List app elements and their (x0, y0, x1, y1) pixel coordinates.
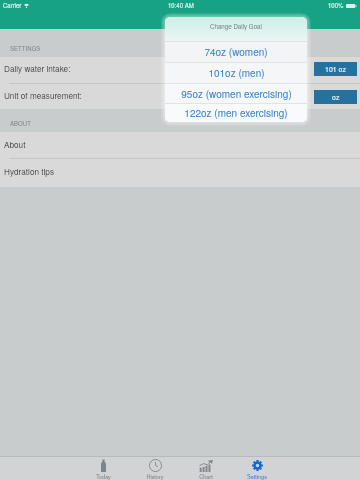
button[interactable]: Settings tab (231, 457, 283, 480)
staticText: 101 oz (325, 64, 347, 74)
staticText: Daily water intake: (4, 63, 71, 75)
staticText: Hydration tips (4, 166, 55, 178)
staticText: 101oz (men) (208, 66, 265, 80)
button[interactable]: Today tab (77, 457, 129, 480)
button[interactable]: 95oz (women exercising) (165, 84, 307, 103)
staticText: 100% (328, 1, 344, 10)
button[interactable]: Unit of measurement: (0, 84, 360, 109)
staticText: Chart (199, 473, 213, 480)
button[interactable]: 74oz (women) (165, 42, 307, 62)
staticText: 95oz (women exercising) (181, 87, 292, 101)
button[interactable]: oz (314, 90, 357, 104)
button[interactable]: About (0, 132, 360, 158)
button[interactable]: 122oz (men exercising) (165, 104, 307, 122)
staticText: SETTINGS (10, 44, 41, 53)
button[interactable]: Chart tab (180, 457, 232, 480)
staticText: oz (332, 92, 340, 102)
staticText: About (4, 139, 26, 151)
staticText: Unit of measurement: (4, 90, 82, 102)
staticText: Carrier (3, 1, 22, 10)
button[interactable]: 101 oz (314, 62, 357, 76)
button[interactable]: Daily water intake: (0, 57, 360, 83)
staticText: 10:40 AM (168, 1, 194, 10)
staticText: 74oz (women) (204, 45, 268, 59)
staticText: 122oz (men exercising) (184, 106, 288, 120)
staticText: Settings (247, 473, 267, 480)
staticText: Change Daily Goal (210, 22, 262, 31)
button[interactable]: History tab (129, 457, 181, 480)
staticText: History (146, 473, 164, 480)
button[interactable]: 101oz (men) (165, 63, 307, 83)
staticText: Today (96, 473, 111, 480)
button[interactable]: Hydration tips (0, 159, 360, 187)
staticText: ABOUT (10, 119, 31, 128)
